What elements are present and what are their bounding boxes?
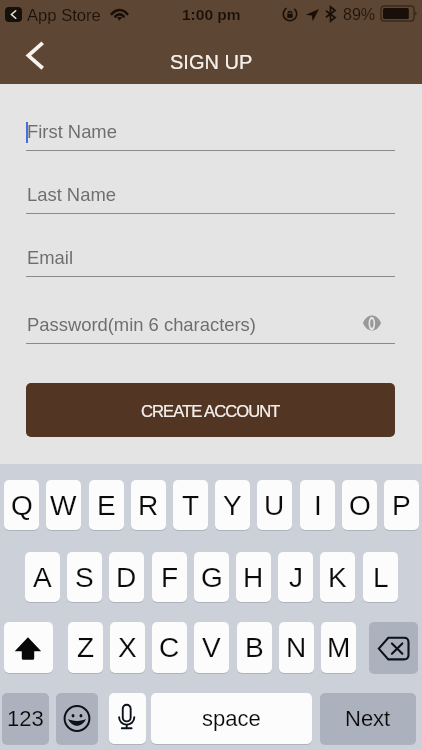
button[interactable]: space [151, 693, 312, 744]
button[interactable]: Email [26, 243, 395, 277]
button[interactable]: T [173, 480, 208, 530]
staticText: 123 [7, 706, 44, 731]
staticText: P [392, 490, 411, 521]
staticText: R [138, 490, 159, 521]
staticText: E [97, 490, 116, 521]
staticText: Y [223, 490, 242, 521]
staticText: K [328, 562, 347, 593]
button[interactable]: H [236, 552, 271, 602]
button[interactable]: Back [13, 34, 57, 78]
staticText: First Name [27, 121, 117, 142]
button[interactable]: First Name [26, 117, 395, 151]
button[interactable]: W [46, 480, 81, 530]
staticText: Z [77, 632, 95, 663]
staticText: F [161, 562, 179, 593]
button[interactable]: Emoji [56, 693, 98, 744]
button[interactable]: L [363, 552, 398, 602]
button[interactable]: C [152, 622, 187, 673]
button[interactable]: Z [68, 622, 103, 673]
staticText: H [243, 562, 264, 593]
button[interactable]: O [342, 480, 377, 530]
button[interactable]: Last Name [26, 180, 395, 214]
button[interactable]: J [278, 552, 313, 602]
button[interactable]: K [320, 552, 355, 602]
button[interactable]: P [384, 480, 419, 530]
staticText: L [373, 562, 389, 593]
staticText: S [75, 562, 94, 593]
button[interactable]: Password(min 6 characters) [26, 310, 395, 344]
button[interactable]: R [131, 480, 166, 530]
button[interactable]: S [67, 552, 102, 602]
staticText: 89% [343, 6, 376, 24]
button[interactable]: CREATE ACCOUNT [26, 383, 395, 437]
button[interactable]: 123 [2, 693, 49, 744]
staticText: V [202, 632, 221, 663]
button[interactable]: M [321, 622, 356, 673]
staticText: C [159, 632, 180, 663]
button[interactable]: Backspace [369, 622, 418, 673]
staticText: G [201, 562, 223, 593]
staticText: W [50, 490, 77, 521]
staticText: Last Name [27, 184, 116, 205]
button[interactable]: Next [320, 693, 416, 744]
staticText: X [118, 632, 137, 663]
button[interactable]: Y [215, 480, 250, 530]
staticText: 1:00 pm [182, 6, 241, 23]
staticText: space [202, 706, 261, 731]
staticText: D [116, 562, 137, 593]
staticText: Password(min 6 characters) [27, 314, 256, 335]
button[interactable]: A [25, 552, 60, 602]
button[interactable]: G [194, 552, 229, 602]
staticText: A [33, 562, 52, 593]
button[interactable]: B [237, 622, 272, 673]
button[interactable]: I [300, 480, 335, 530]
button[interactable]: F [152, 552, 187, 602]
staticText: B [245, 632, 264, 663]
button[interactable]: Dictate [109, 693, 146, 744]
button[interactable]: X [110, 622, 145, 673]
staticText: O [349, 490, 371, 521]
staticText: CREATE ACCOUNT [141, 402, 280, 421]
staticText: U [264, 490, 285, 521]
button[interactable]: E [89, 480, 124, 530]
button[interactable]: N [279, 622, 314, 673]
staticText: M [327, 632, 351, 663]
staticText: Email [27, 247, 73, 268]
button[interactable]: D [109, 552, 144, 602]
staticText: SIGN UP [170, 51, 253, 73]
button[interactable]: Q [4, 480, 39, 530]
other: Show password [363, 314, 381, 332]
staticText: Next [345, 706, 391, 731]
staticText: App Store [27, 6, 101, 25]
button[interactable]: Shift [4, 622, 53, 673]
staticText: N [286, 632, 307, 663]
button[interactable]: U [257, 480, 292, 530]
staticText: Q [11, 490, 33, 521]
staticText: J [289, 562, 303, 593]
staticText: T [182, 490, 200, 521]
staticText: I [314, 490, 322, 521]
button[interactable]: V [194, 622, 229, 673]
